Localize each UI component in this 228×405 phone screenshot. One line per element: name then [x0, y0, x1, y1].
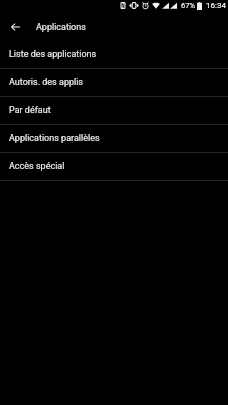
staticText: Liste des applications: [9, 49, 97, 60]
staticText: 67%: [181, 1, 195, 10]
button[interactable]: Back: [0, 16, 26, 41]
staticText: Applications parallèles: [9, 133, 100, 144]
button[interactable]: Par défaut: [0, 97, 228, 125]
staticText: 16:34: [206, 1, 226, 10]
staticText: Par défaut: [9, 105, 51, 116]
button[interactable]: Autoris. des applis: [0, 69, 228, 97]
button[interactable]: Accès spécial: [0, 153, 228, 181]
button[interactable]: Applications parallèles: [0, 125, 228, 153]
staticText: Applications: [36, 22, 86, 33]
button[interactable]: Liste des applications: [0, 41, 228, 69]
staticText: Accès spécial: [9, 161, 65, 172]
staticText: Autoris. des applis: [9, 77, 84, 88]
